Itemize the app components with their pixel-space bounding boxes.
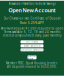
staticText: Our Champion rate Certificate of Deposit: [3, 17, 60, 20]
staticText: Rate 5.25% APY: [20, 21, 44, 25]
staticText: Deposit amount: [21, 48, 43, 52]
staticText: Minimum deposit $1,000 required to open: [0, 27, 63, 30]
staticText: All deposits insured to $250,000.: [7, 65, 57, 68]
staticText: Full name: [25, 40, 38, 44]
staticText: Open New Account: [8, 6, 55, 14]
button[interactable]: Continue: [27, 55, 36, 59]
staticText: Continue: [27, 54, 36, 61]
staticText: Interest compounded daily, paid monthly: [3, 34, 61, 37]
staticText: Member FDIC. Equal Housing Lender.: [6, 61, 58, 65]
staticText: Alexander Hamilton Federal Savings: [8, 2, 55, 5]
staticText: Email address: [23, 44, 40, 48]
staticText: Terms available 6, 12, 18 and 24 months: [4, 30, 60, 34]
